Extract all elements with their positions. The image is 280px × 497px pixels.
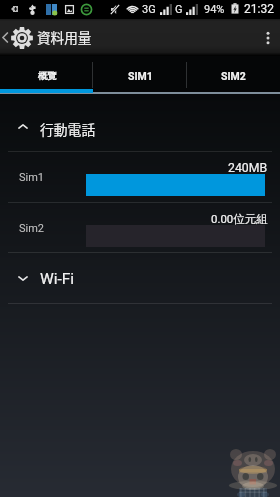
button[interactable]: SIM2 <box>187 56 280 89</box>
staticText: 0.00位元組 <box>211 212 268 226</box>
staticText: 21:32 <box>244 2 274 16</box>
button[interactable]: Sim1 <box>0 151 280 202</box>
staticText: 資料用量 <box>37 27 92 47</box>
staticText: 概覽 <box>38 70 57 82</box>
staticText: Sim1 <box>19 171 45 184</box>
staticText: 3G <box>142 3 156 16</box>
button[interactable]: SIM1 <box>94 56 187 89</box>
button[interactable]: More options <box>256 19 280 56</box>
staticText: G <box>175 3 183 16</box>
button[interactable]: Sim2 <box>0 202 280 252</box>
staticText: Wi-Fi <box>40 270 75 288</box>
staticText: 240MB <box>228 161 268 175</box>
staticText: SIM2 <box>221 70 246 82</box>
button[interactable]: Wi-Fi <box>0 252 280 303</box>
staticText: 行動電話 <box>40 119 96 139</box>
button[interactable]: Back to settings <box>0 19 37 56</box>
staticText: SIM1 <box>128 70 153 82</box>
staticText: Sim2 <box>19 222 45 235</box>
staticText: 94% <box>204 3 225 16</box>
button[interactable]: 行動電話 <box>0 100 280 151</box>
button[interactable]: 概覽 <box>0 56 94 89</box>
